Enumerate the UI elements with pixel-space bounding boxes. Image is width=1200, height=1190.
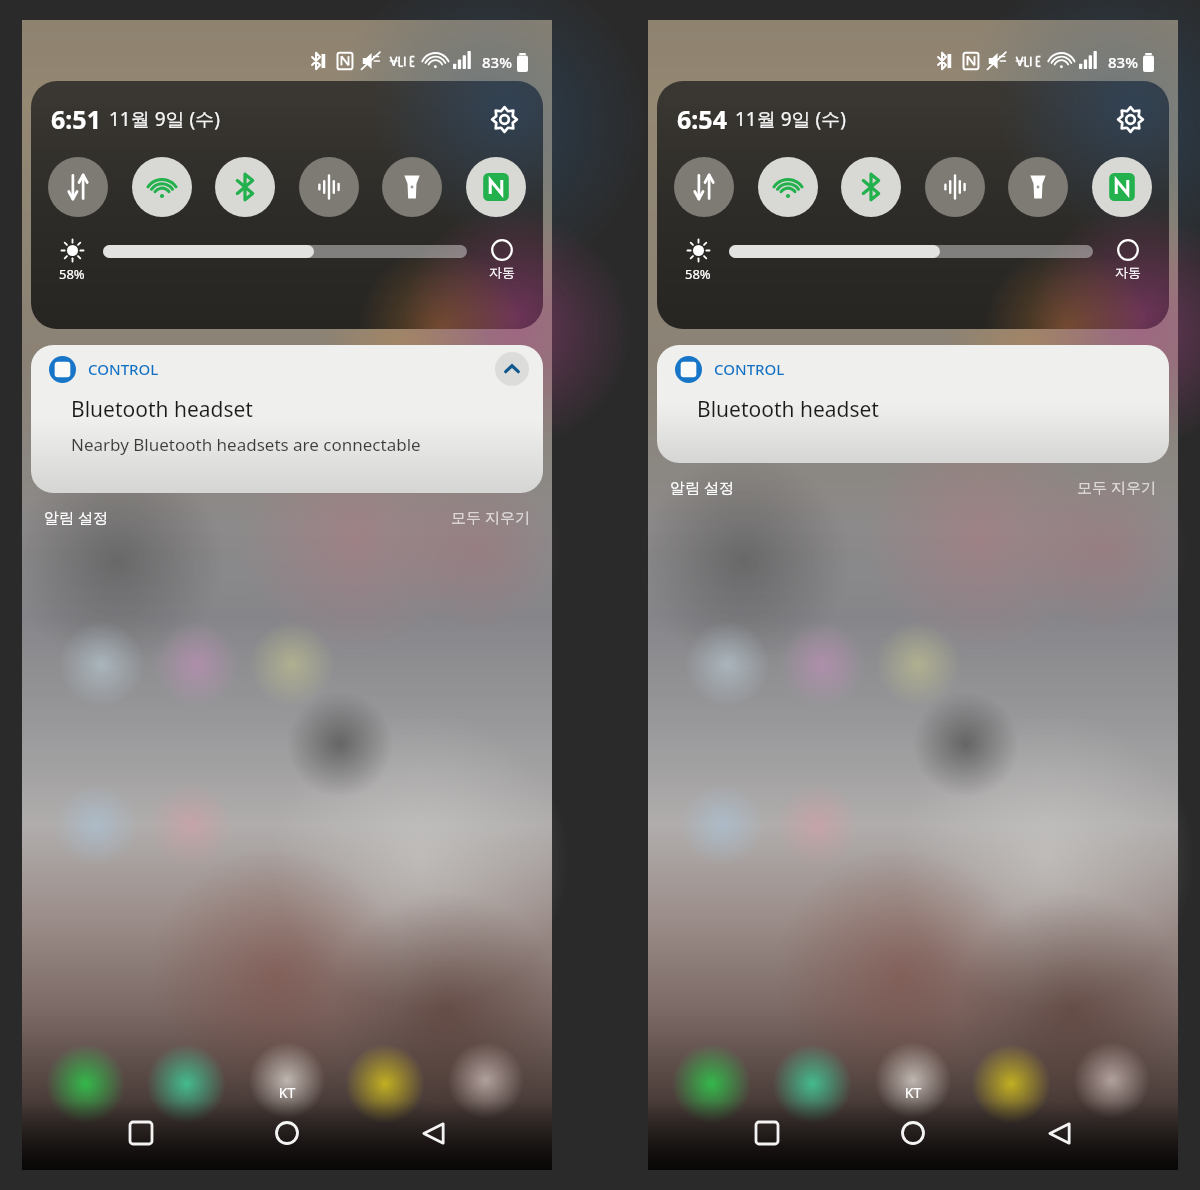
staticText: KT bbox=[648, 1083, 1178, 1102]
button[interactable]: Brightness slider bbox=[729, 243, 1093, 259]
button[interactable]: CONTROL bbox=[31, 345, 543, 493]
button[interactable]: Brightness slider bbox=[103, 243, 467, 259]
button[interactable]: Home bbox=[886, 1106, 940, 1160]
button[interactable]: Brightness bbox=[49, 239, 95, 283]
staticText: 83% bbox=[482, 52, 512, 72]
staticText: CONTROL bbox=[714, 359, 785, 379]
button[interactable]: Recents bbox=[740, 1106, 794, 1160]
button[interactable]: CONTROL bbox=[657, 345, 1169, 463]
staticText: 11월 9일 (수) bbox=[109, 106, 220, 132]
button[interactable]: Settings bbox=[483, 98, 525, 140]
staticText: 자동 bbox=[489, 264, 515, 280]
button[interactable]: Sound bbox=[299, 157, 359, 217]
button[interactable]: Flashlight bbox=[382, 157, 442, 217]
button[interactable]: Auto brightness bbox=[1105, 239, 1151, 280]
staticText: 6:54 bbox=[677, 102, 727, 136]
staticText: Nearby Bluetooth headsets are connectabl… bbox=[71, 433, 421, 456]
button[interactable]: Collapse bbox=[495, 352, 529, 386]
button[interactable]: Back bbox=[406, 1106, 460, 1160]
button[interactable]: NFC bbox=[466, 157, 526, 217]
button[interactable]: Recents bbox=[114, 1106, 168, 1160]
staticText: Bluetooth headset bbox=[71, 395, 253, 424]
button[interactable]: Brightness bbox=[675, 239, 721, 283]
button[interactable]: 알림 설정 bbox=[44, 507, 108, 527]
button[interactable]: Back bbox=[1032, 1106, 1086, 1160]
staticText: Bluetooth headset bbox=[697, 395, 879, 424]
staticText: CONTROL bbox=[88, 359, 159, 379]
button[interactable]: 알림 설정 bbox=[670, 477, 734, 497]
button[interactable]: Wi-Fi bbox=[758, 157, 818, 217]
staticText: 83% bbox=[1108, 52, 1138, 72]
staticText: 58% bbox=[685, 265, 711, 283]
button[interactable]: Bluetooth bbox=[841, 157, 901, 217]
staticText: 11월 9일 (수) bbox=[735, 106, 846, 132]
button[interactable]: Mobile data bbox=[48, 157, 108, 217]
button[interactable]: Sound bbox=[925, 157, 985, 217]
button[interactable]: Bluetooth bbox=[215, 157, 275, 217]
button[interactable]: Home bbox=[260, 1106, 314, 1160]
button[interactable]: Mobile data bbox=[674, 157, 734, 217]
staticText: 자동 bbox=[1115, 264, 1141, 280]
button[interactable]: 모두 지우기 bbox=[451, 507, 530, 527]
button[interactable]: Wi-Fi bbox=[132, 157, 192, 217]
staticText: KT bbox=[22, 1083, 552, 1102]
staticText: 58% bbox=[59, 265, 85, 283]
button[interactable]: NFC bbox=[1092, 157, 1152, 217]
button[interactable]: Settings bbox=[1109, 98, 1151, 140]
button[interactable]: Flashlight bbox=[1008, 157, 1068, 217]
staticText: 6:51 bbox=[51, 102, 101, 136]
button[interactable]: Auto brightness bbox=[479, 239, 525, 280]
button[interactable]: 모두 지우기 bbox=[1077, 477, 1156, 497]
